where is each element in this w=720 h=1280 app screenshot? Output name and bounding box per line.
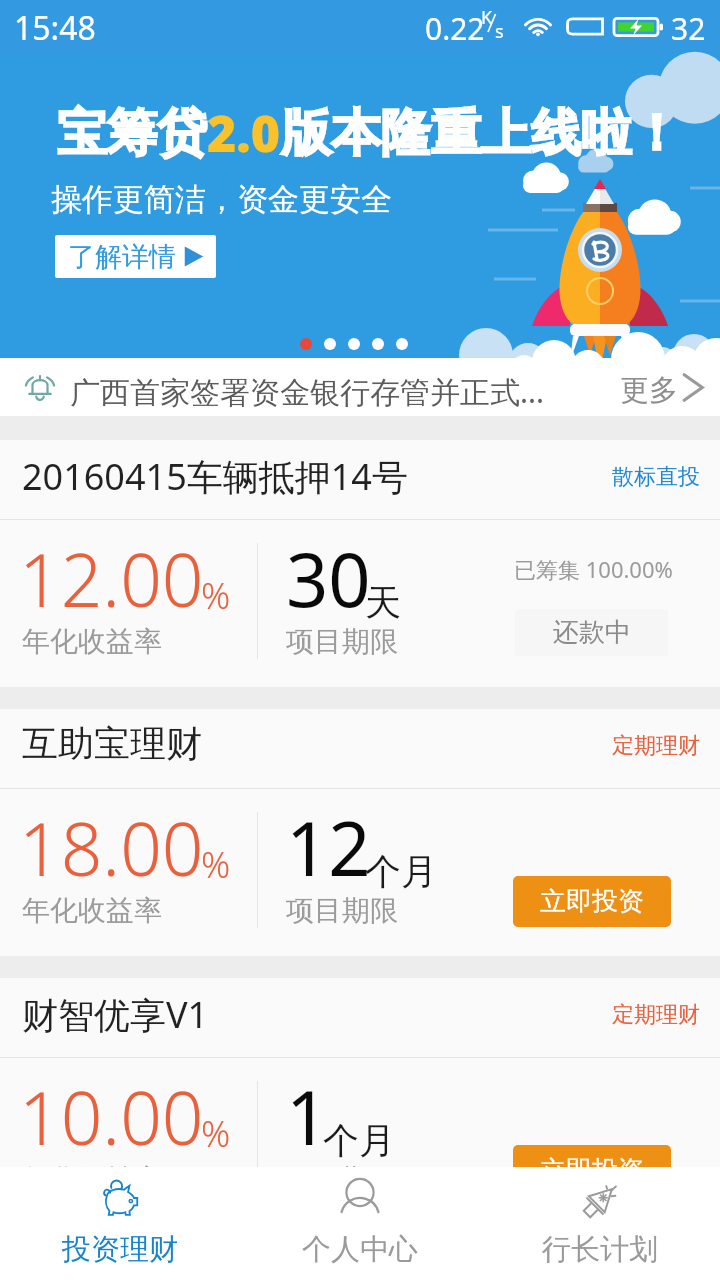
staticText: 投资理财 — [62, 1231, 178, 1268]
button[interactable]: 了解详情 — [55, 235, 216, 278]
staticText: 年化收益率 — [22, 624, 162, 659]
staticText: 立即投资 — [540, 885, 644, 918]
button[interactable]: 个人中心 — [240, 1167, 480, 1280]
button[interactable]: 行长计划 — [480, 1167, 720, 1280]
staticText: 个人中心 — [302, 1231, 418, 1268]
staticText: s — [495, 19, 504, 44]
staticText: 32 — [671, 8, 706, 49]
button[interactable]: 还款中 — [515, 609, 668, 656]
staticText: 个月 — [365, 849, 437, 894]
staticText: 2.0 — [207, 99, 281, 167]
staticText: 版本隆重上线啦！ — [281, 102, 681, 165]
staticText: 财智优享V1 — [22, 990, 209, 1039]
staticText: 10.00 — [19, 1067, 204, 1166]
staticText: 12 — [286, 797, 371, 898]
staticText: 项目期限 — [286, 624, 398, 659]
staticText: 30 — [286, 528, 371, 629]
staticText: 项目期限 — [286, 893, 398, 928]
staticText: 更多 — [620, 372, 678, 409]
button[interactable]: 互助宝理财 — [0, 709, 720, 956]
staticText: % — [201, 840, 231, 889]
staticText: 15:48 — [14, 6, 96, 50]
staticText: 宝筹贷 — [57, 102, 207, 165]
staticText: 0.22 — [425, 8, 485, 49]
staticText: 18.00 — [19, 798, 204, 897]
button[interactable]: 投资理财 — [0, 1167, 240, 1280]
staticText: 还款中 — [553, 616, 631, 649]
staticText: 天 — [365, 580, 401, 625]
staticText: 12.00 — [19, 529, 204, 628]
staticText: 1 — [286, 1066, 329, 1167]
button[interactable]: 立即投资 — [513, 876, 671, 927]
staticText: 年化收益率 — [22, 893, 162, 928]
staticText: % — [201, 571, 231, 620]
staticText: 定期理财 — [612, 732, 700, 760]
staticText: % — [201, 1109, 231, 1158]
button[interactable]: 广西首家签署资金银行存管并正式... — [0, 358, 720, 416]
button[interactable]: 20160415车辆抵押14号 — [0, 440, 720, 687]
staticText: 了解详情 — [68, 240, 176, 274]
button[interactable]: 财智优享V1 — [0, 978, 720, 1225]
staticText: 个月 — [323, 1118, 395, 1163]
button[interactable]: 立即投资 — [513, 1145, 671, 1196]
staticText: 行长计划 — [542, 1231, 658, 1268]
staticText: 操作更简洁，资金更安全 — [51, 180, 392, 219]
staticText: 定期理财 — [612, 1001, 700, 1029]
staticText: 项目期限 — [286, 1162, 398, 1197]
staticText: 互助宝理财 — [22, 721, 202, 766]
staticText: 已筹集 100.00% — [514, 554, 673, 584]
staticText: K — [481, 5, 493, 30]
staticText: 年化收益率 — [22, 1162, 162, 1197]
staticText: 立即投资 — [540, 1154, 644, 1187]
button[interactable]: Promotion banner — [0, 56, 720, 358]
staticText: 20160415车辆抵押14号 — [22, 452, 408, 501]
staticText: 散标直投 — [612, 463, 700, 491]
staticText: 广西首家签署资金银行存管并正式... — [70, 371, 545, 412]
